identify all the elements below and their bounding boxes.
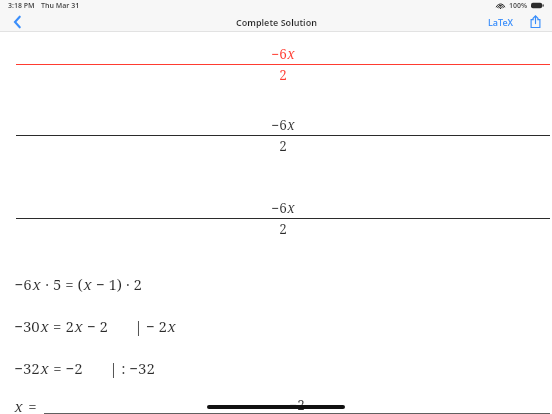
button[interactable]: Share — [526, 11, 544, 32]
staticText: LaTeX — [488, 16, 514, 28]
staticText: −6 — [271, 199, 287, 217]
staticText: x — [83, 274, 92, 294]
staticText: x — [14, 396, 23, 414]
staticText: −2 — [289, 396, 305, 414]
staticText: 2 — [279, 66, 287, 84]
staticText: −6 — [271, 116, 287, 134]
staticText: · 5 = ( — [41, 274, 83, 294]
staticText: x — [287, 45, 295, 63]
staticText: Complete Solution — [236, 16, 317, 28]
staticText: x — [40, 316, 49, 336]
staticText: 2 — [279, 137, 287, 155]
staticText: x — [287, 116, 295, 134]
staticText: −6 — [271, 45, 287, 63]
staticText: 3:18 PM — [8, 1, 35, 11]
staticText: −30 — [14, 316, 40, 336]
button[interactable]: LaTeX — [484, 11, 518, 32]
button[interactable]: Back — [0, 11, 34, 32]
staticText: − 2 — [83, 316, 108, 336]
staticText: x — [40, 358, 49, 378]
staticText: −6 — [14, 274, 32, 294]
staticText: −32 — [14, 358, 40, 378]
staticText: 100% — [509, 1, 528, 11]
staticText: = — [28, 396, 37, 414]
staticText: Thu Mar 31 — [41, 1, 80, 11]
staticText: | — [134, 316, 143, 336]
staticText: − 2 — [146, 316, 167, 336]
staticText: x — [74, 316, 83, 336]
staticText: 2 — [279, 220, 287, 238]
staticText: x — [167, 316, 176, 336]
staticText: : −32 — [121, 358, 155, 378]
staticText: − 1) · 2 — [92, 274, 142, 294]
staticText: = −2 — [49, 358, 83, 378]
staticText: x — [32, 274, 41, 294]
staticText: | — [109, 358, 118, 378]
staticText: x — [287, 199, 295, 217]
staticText: = 2 — [49, 316, 74, 336]
